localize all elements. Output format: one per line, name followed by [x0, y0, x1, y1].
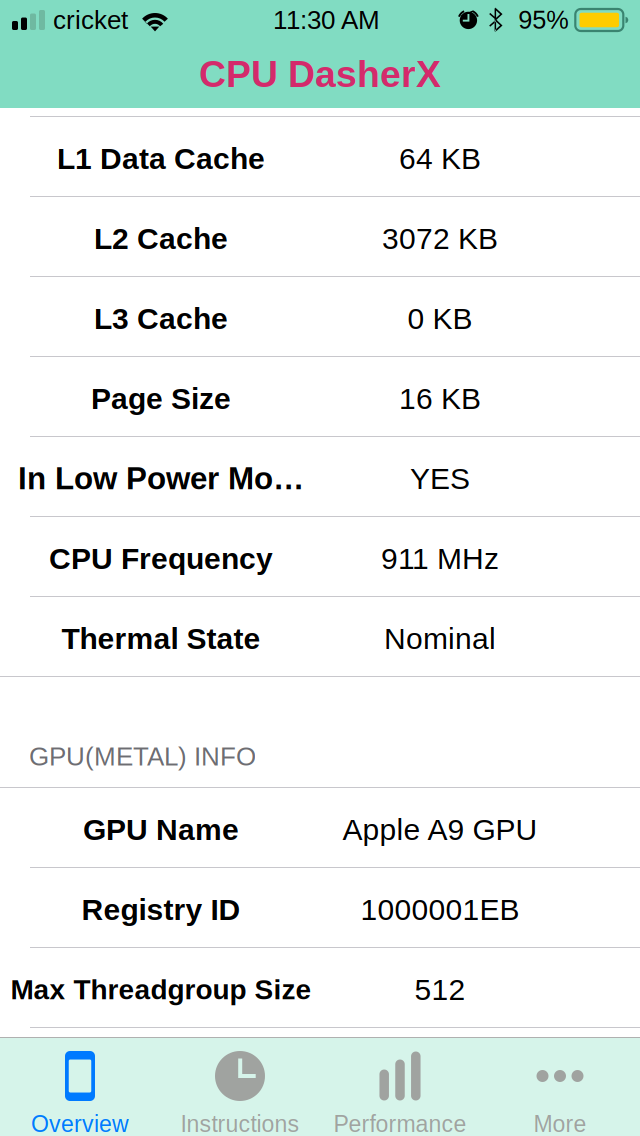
- staticText: 64 KB: [399, 142, 481, 175]
- staticText: Max Threadgroup Size: [10, 974, 311, 1005]
- staticText: 3072 KB: [382, 222, 498, 255]
- staticText: More: [533, 1111, 586, 1136]
- staticText: CPU DasherX: [199, 53, 441, 95]
- button[interactable]: Instructions: [160, 1038, 320, 1136]
- staticText: 1000001EB: [360, 893, 519, 926]
- staticText: CPU Frequency: [49, 542, 273, 575]
- button[interactable]: Overview: [0, 1038, 160, 1136]
- staticText: Page Size: [91, 382, 231, 415]
- staticText: 16 KB: [399, 382, 481, 415]
- staticText: Performance: [333, 1111, 466, 1136]
- button[interactable]: Performance: [320, 1038, 480, 1136]
- staticText: GPU(METAL) INFO: [29, 742, 256, 771]
- staticText: Instructions: [180, 1111, 299, 1136]
- staticText: L3 Cache: [94, 302, 228, 335]
- staticText: Thermal State: [61, 622, 260, 655]
- staticText: Apple A9 GPU: [342, 813, 537, 846]
- staticText: 512: [414, 973, 465, 1006]
- staticText: 11:30 AM: [273, 5, 380, 34]
- staticText: Registry ID: [81, 893, 240, 926]
- staticText: YES: [410, 462, 470, 495]
- staticText: L1 Data Cache: [57, 142, 265, 175]
- staticText: 0 KB: [407, 302, 472, 335]
- staticText: 911 MHz: [381, 542, 499, 575]
- staticText: Nominal: [384, 622, 496, 655]
- staticText: Overview: [31, 1111, 129, 1136]
- button[interactable]: More: [480, 1038, 640, 1136]
- staticText: L2 Cache: [94, 222, 228, 255]
- staticText: GPU Name: [83, 813, 239, 846]
- staticText: In Low Power Mo…: [18, 461, 304, 496]
- staticText: cricket: [53, 5, 128, 34]
- staticText: 95%: [518, 6, 569, 34]
